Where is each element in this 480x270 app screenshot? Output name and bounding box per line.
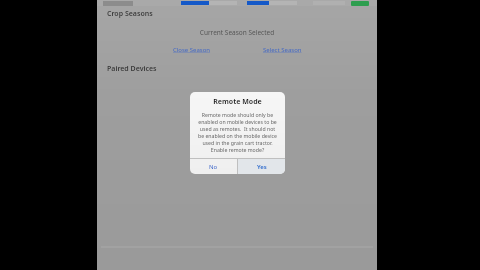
staticText: Paired Devices [107,64,157,74]
button[interactable]: Close Season [171,45,213,55]
staticText: Select Season [263,46,302,54]
staticText: Current Season Selected [97,28,377,37]
button[interactable]: Connect [351,1,369,6]
staticText: Crop Seasons [107,9,153,19]
button[interactable]: No [190,159,237,174]
button[interactable]: Select Season [261,45,304,55]
button[interactable]: Yes [238,159,285,174]
staticText: Remote Mode [190,97,285,107]
staticText: Close Season [173,46,211,54]
staticText: Remote mode should only be enabled on mo… [197,111,278,153]
staticText: No [209,163,218,171]
staticText: Yes [257,163,267,171]
